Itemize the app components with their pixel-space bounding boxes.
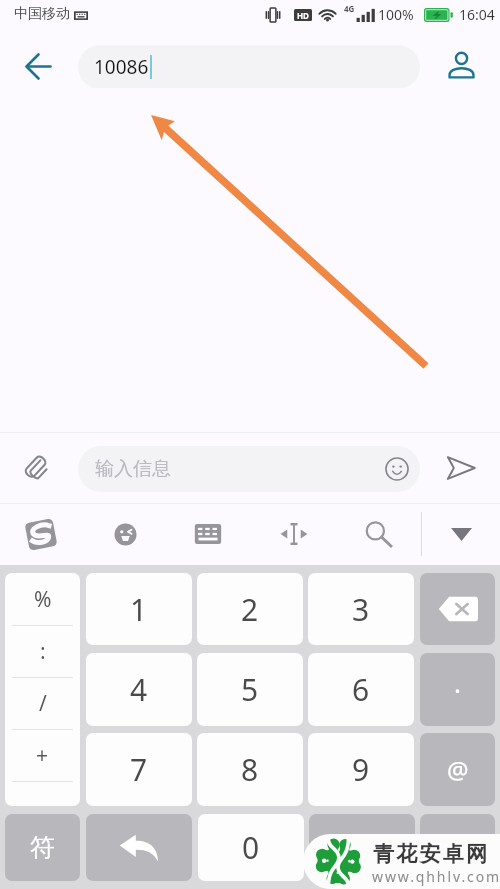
button[interactable]: Attach bbox=[13, 444, 61, 492]
button[interactable]: Confirm bbox=[420, 814, 495, 881]
staticText: 中国移动 bbox=[14, 5, 70, 23]
button[interactable]: + bbox=[5, 729, 80, 781]
staticText: + bbox=[36, 741, 49, 770]
button[interactable]: 9 bbox=[308, 733, 414, 806]
button[interactable]: Space bbox=[309, 814, 415, 881]
button[interactable]: 1 bbox=[86, 573, 192, 645]
button[interactable]: 4 bbox=[86, 653, 192, 726]
button[interactable]: Contacts bbox=[437, 42, 484, 89]
button[interactable]: 6 bbox=[308, 653, 414, 726]
button[interactable]: 2 bbox=[197, 573, 303, 645]
staticText: 4G bbox=[344, 3, 355, 14]
staticText: 0 bbox=[242, 827, 260, 868]
button[interactable]: Enter bbox=[86, 814, 192, 881]
staticText: 6 bbox=[352, 669, 370, 710]
button[interactable]: Move cursor bbox=[271, 511, 317, 557]
button[interactable]: @ bbox=[420, 733, 495, 806]
button[interactable]: Sogou input method bbox=[18, 511, 64, 557]
staticText: 3 bbox=[352, 589, 370, 630]
button[interactable]: 输入信息 bbox=[78, 446, 420, 492]
staticText: / bbox=[39, 689, 47, 718]
button[interactable]: Collapse keyboard bbox=[438, 511, 484, 557]
staticText: % bbox=[34, 585, 52, 614]
button[interactable]: Back bbox=[14, 42, 62, 90]
button[interactable]: 5 bbox=[197, 653, 303, 726]
button[interactable]: / bbox=[5, 677, 80, 729]
staticText: 输入信息 bbox=[95, 457, 171, 481]
staticText: · bbox=[454, 672, 461, 707]
button[interactable]: Send bbox=[437, 444, 485, 492]
staticText: 9 bbox=[352, 749, 370, 790]
staticText: 5 bbox=[241, 669, 259, 710]
staticText: 8 bbox=[241, 749, 259, 790]
staticText: : bbox=[40, 637, 46, 666]
staticText: HD bbox=[297, 10, 309, 21]
button[interactable]: % bbox=[5, 573, 80, 625]
button[interactable]: Search bbox=[356, 511, 402, 557]
staticText: 10086 bbox=[94, 54, 149, 80]
button[interactable]: 7 bbox=[86, 733, 192, 806]
button[interactable]: Keyboard bbox=[185, 511, 231, 557]
staticText: 符 bbox=[30, 832, 55, 863]
staticText: www.qhhlv.com bbox=[372, 867, 500, 886]
button[interactable]: : bbox=[5, 625, 80, 677]
staticText: 青花安卓网 bbox=[372, 841, 488, 867]
staticText: @ bbox=[447, 753, 469, 786]
button[interactable]: 符 bbox=[5, 814, 80, 881]
button[interactable]: 0 bbox=[198, 814, 304, 881]
staticText: 16:04 bbox=[459, 5, 495, 24]
button[interactable]: 10086 bbox=[78, 45, 420, 89]
button[interactable]: Emoji bbox=[102, 511, 148, 557]
staticText: 4 bbox=[130, 669, 148, 710]
button[interactable]: 8 bbox=[197, 733, 303, 806]
button[interactable]: Backspace bbox=[420, 573, 495, 645]
staticText: 100% bbox=[378, 5, 414, 24]
staticText: 2 bbox=[241, 589, 259, 630]
staticText: 1 bbox=[130, 589, 148, 630]
button[interactable]: 3 bbox=[308, 573, 414, 645]
staticText: 7 bbox=[130, 749, 148, 790]
button[interactable]: · bbox=[420, 653, 495, 726]
button[interactable]: Emoji bbox=[380, 452, 414, 486]
